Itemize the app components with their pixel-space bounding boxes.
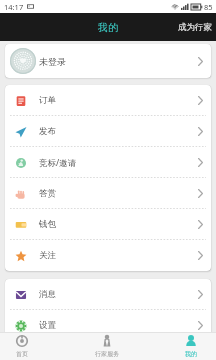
staticText: 发布 bbox=[39, 126, 56, 137]
button[interactable]: 我的 bbox=[170, 332, 212, 360]
button[interactable]: 竞标/邀请 bbox=[5, 147, 211, 178]
staticText: 我的 bbox=[98, 21, 118, 34]
staticText: 未登录 bbox=[39, 56, 66, 67]
staticText: 14:17 bbox=[4, 2, 24, 12]
button[interactable]: 订单 bbox=[5, 85, 211, 116]
staticText: 关注 bbox=[39, 250, 56, 261]
button[interactable]: 首页 bbox=[1, 332, 43, 360]
button[interactable]: 未登录 bbox=[5, 44, 211, 78]
staticText: 竞标/邀请 bbox=[39, 157, 77, 169]
staticText: 行家服务 bbox=[95, 350, 119, 358]
staticText: 消息 bbox=[39, 289, 56, 300]
button[interactable]: 成为行家 bbox=[156, 13, 216, 41]
button[interactable]: 钱包 bbox=[5, 209, 211, 240]
button[interactable]: 答赏 bbox=[5, 178, 211, 209]
staticText: 成为行家 bbox=[178, 22, 212, 33]
button[interactable]: 行家服务 bbox=[86, 332, 128, 360]
button[interactable]: 消息 bbox=[5, 279, 211, 310]
staticText: 设置 bbox=[39, 320, 56, 331]
staticText: 钱包 bbox=[39, 219, 56, 230]
staticText: 85 bbox=[204, 2, 213, 12]
staticText: 答赏 bbox=[39, 188, 56, 199]
staticText: 首页 bbox=[16, 350, 28, 358]
button[interactable]: 发布 bbox=[5, 116, 211, 147]
button[interactable]: 设置 bbox=[5, 310, 211, 341]
staticText: 订单 bbox=[39, 95, 56, 106]
staticText: 我的 bbox=[185, 350, 197, 358]
button[interactable]: 关注 bbox=[5, 240, 211, 271]
